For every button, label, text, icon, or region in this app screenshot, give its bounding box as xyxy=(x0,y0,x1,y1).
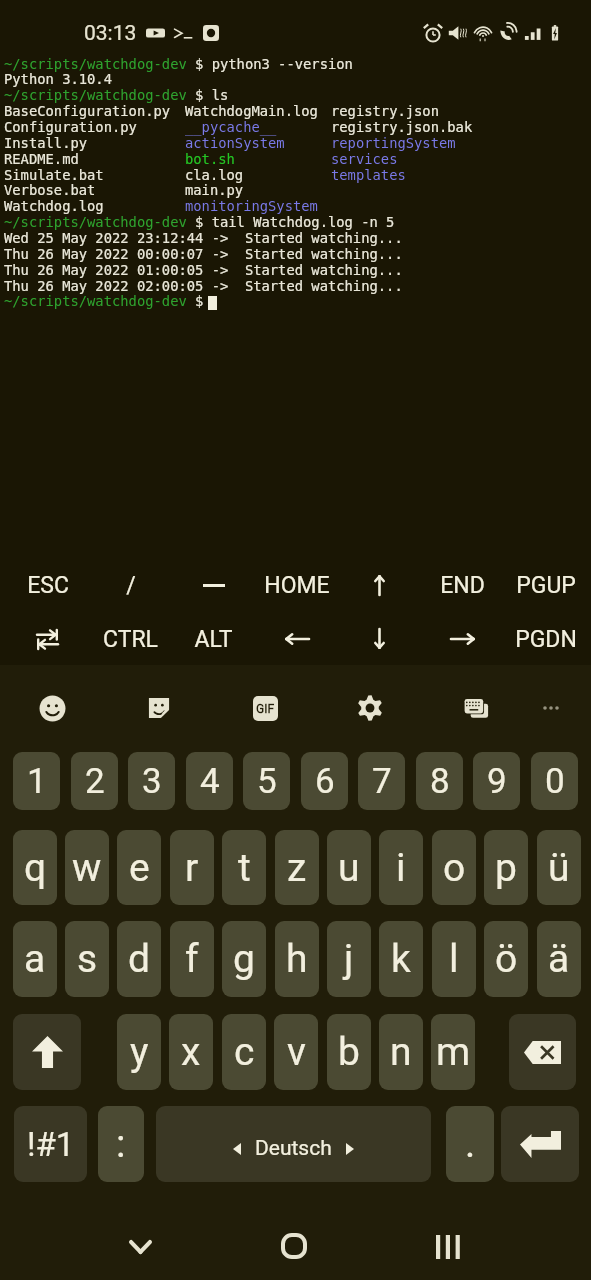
button[interactable]: HOME xyxy=(255,562,338,608)
button[interactable]: b xyxy=(327,1014,371,1090)
staticText: e xyxy=(129,845,150,891)
staticText: HOME xyxy=(264,572,330,599)
staticText: Simulate.bat xyxy=(4,167,104,183)
button[interactable]: ALT xyxy=(172,615,255,663)
button[interactable]: p xyxy=(484,830,528,905)
button[interactable]: ä xyxy=(537,921,581,997)
button[interactable]: Hide keyboard xyxy=(110,1222,170,1272)
staticText: ESC xyxy=(27,572,69,599)
staticText: 5 xyxy=(257,761,277,802)
button[interactable]: / xyxy=(89,562,172,608)
button[interactable]: 3 xyxy=(128,752,175,810)
button[interactable]: 2 xyxy=(71,752,118,810)
staticText: Verbose.bat xyxy=(4,182,96,198)
button[interactable]: GIF xyxy=(237,682,293,734)
staticText: c xyxy=(234,1029,255,1075)
button[interactable]: ö xyxy=(484,921,528,997)
staticText: GIF xyxy=(256,702,275,716)
button[interactable]: Home xyxy=(264,1221,324,1271)
button[interactable]: o xyxy=(432,830,476,905)
button[interactable]: x xyxy=(169,1014,213,1090)
button[interactable]: Deutsch xyxy=(156,1106,431,1182)
button[interactable]: l xyxy=(432,921,476,997)
button[interactable]: . xyxy=(446,1106,494,1182)
button[interactable]: f xyxy=(170,921,214,997)
button[interactable]: n xyxy=(379,1014,423,1090)
button[interactable]: k xyxy=(379,921,423,997)
button[interactable]: 9 xyxy=(473,752,520,810)
button[interactable] xyxy=(172,562,255,608)
other: Up xyxy=(374,575,385,595)
button[interactable]: Emoji xyxy=(24,682,80,734)
staticText: monitoringSystem xyxy=(185,198,318,214)
button[interactable]: 5 xyxy=(243,752,290,810)
staticText: i xyxy=(396,845,406,891)
button[interactable]: q xyxy=(13,830,57,905)
staticText: reportingSystem xyxy=(331,135,456,151)
button[interactable]: m xyxy=(431,1014,475,1090)
button[interactable]: a xyxy=(13,921,57,997)
staticText: PGDN xyxy=(515,626,577,653)
button[interactable]: s xyxy=(65,921,109,997)
button[interactable]: More options xyxy=(523,682,579,734)
staticText: ~/scripts/watchdog-dev $ ls xyxy=(4,87,229,103)
staticText: ~/scripts/watchdog-dev $ xyxy=(4,293,204,309)
button[interactable]: !#1 xyxy=(14,1106,87,1182)
staticText: p xyxy=(495,845,517,891)
button[interactable]: i xyxy=(379,830,423,905)
button[interactable]: 8 xyxy=(416,752,463,810)
button[interactable]: ESC xyxy=(6,562,89,608)
button[interactable]: ü xyxy=(537,830,581,905)
button[interactable]: 0 xyxy=(531,752,578,810)
button[interactable]: Shift xyxy=(13,1014,81,1090)
staticText: templates xyxy=(331,167,406,183)
staticText: __pycache__ xyxy=(185,119,277,135)
other: Down xyxy=(374,629,385,649)
staticText: bot.sh xyxy=(185,151,235,167)
button[interactable]: j xyxy=(327,921,371,997)
button[interactable]: y xyxy=(117,1014,161,1090)
staticText: 7 xyxy=(372,761,392,802)
button[interactable]: Enter xyxy=(501,1106,579,1182)
staticText: s xyxy=(77,936,98,982)
button[interactable]: Tab xyxy=(6,615,89,663)
button[interactable]: Down xyxy=(338,615,421,663)
button[interactable]: PGDN xyxy=(504,615,587,663)
button[interactable]: r xyxy=(170,830,214,905)
button[interactable]: h xyxy=(275,921,319,997)
button[interactable]: Up xyxy=(338,562,421,608)
staticText: x xyxy=(181,1029,201,1075)
button[interactable]: t xyxy=(222,830,266,905)
button[interactable]: c xyxy=(222,1014,266,1090)
button[interactable]: Settings xyxy=(342,682,398,734)
staticText: o xyxy=(443,845,466,891)
button[interactable]: v xyxy=(274,1014,318,1090)
staticText: actionSystem xyxy=(185,135,285,151)
staticText: 03:13 xyxy=(84,21,137,46)
button[interactable]: g xyxy=(222,921,266,997)
button[interactable]: Right xyxy=(421,615,504,663)
button[interactable]: w xyxy=(65,830,109,905)
button[interactable]: Stickers xyxy=(131,682,187,734)
button[interactable]: 6 xyxy=(301,752,348,810)
staticText: registry.json xyxy=(331,103,439,119)
staticText: Thu 26 May 2022 00:00:07 -> Started watc… xyxy=(4,246,403,262)
staticText: services xyxy=(331,151,398,167)
staticText: CTRL xyxy=(103,626,158,653)
staticText: y xyxy=(130,1029,149,1075)
button[interactable]: END xyxy=(421,562,504,608)
button[interactable]: CTRL xyxy=(89,615,172,663)
button[interactable]: 7 xyxy=(358,752,405,810)
button[interactable]: 1 xyxy=(13,752,60,810)
button[interactable]: : xyxy=(98,1106,144,1182)
button[interactable]: 4 xyxy=(186,752,233,810)
button[interactable]: PGUP xyxy=(504,562,587,608)
button[interactable]: u xyxy=(327,830,371,905)
button[interactable]: e xyxy=(117,830,161,905)
button[interactable]: Backspace xyxy=(509,1014,576,1090)
button[interactable]: Keyboard layouts xyxy=(448,682,504,734)
button[interactable]: z xyxy=(275,830,319,905)
button[interactable]: Recent apps xyxy=(418,1222,478,1272)
button[interactable]: d xyxy=(117,921,161,997)
button[interactable]: Left xyxy=(255,615,338,663)
